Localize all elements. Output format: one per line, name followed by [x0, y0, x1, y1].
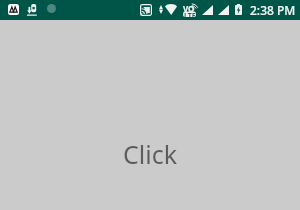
staticText: LTE: [184, 11, 196, 21]
button[interactable]: Click: [119, 137, 182, 171]
other: Screen cast: [140, 4, 152, 16]
staticText: 2:38 PM: [250, 2, 296, 18]
staticText: Click: [123, 137, 178, 171]
other: Download notification: [27, 3, 37, 16]
other: Wi-Fi: [165, 4, 177, 15]
other: VoLTE: [182, 2, 198, 17]
other: App notification: [8, 4, 19, 15]
other: Battery charging: [235, 4, 242, 15]
staticText: VO: [183, 3, 195, 14]
